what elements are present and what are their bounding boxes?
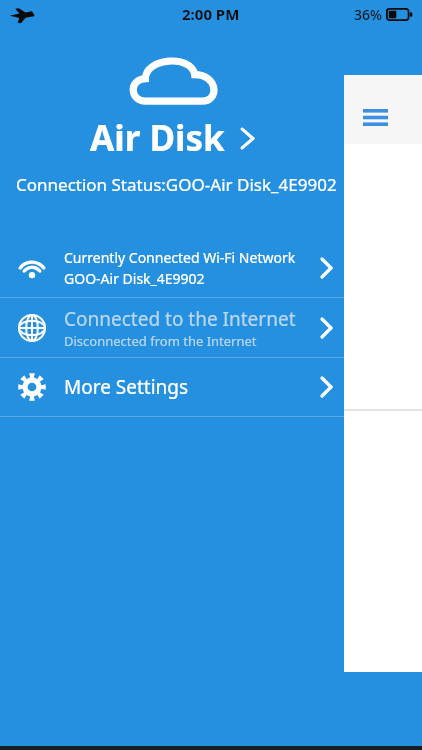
staticText: Air Disk: [90, 114, 225, 162]
staticText: 36%: [354, 5, 382, 24]
button[interactable]: Air Disk: [0, 114, 344, 162]
staticText: 2:00 PM: [182, 4, 240, 24]
button[interactable]: More Settings: [0, 358, 344, 416]
staticText: More Settings: [64, 374, 189, 400]
staticText: GOO-Air Disk_4E9902: [64, 269, 205, 288]
staticText: Currently Connected Wi-Fi Network: [64, 248, 296, 267]
button[interactable]: Currently Connected Wi-Fi Network: [0, 238, 344, 297]
staticText: Disconnected from the Internet: [64, 332, 257, 350]
button[interactable]: Connected to the Internet: [0, 298, 344, 357]
staticText: Connected to the Internet: [64, 306, 296, 332]
staticText: Connection Status:GOO-Air Disk_4E9902: [16, 173, 337, 196]
button[interactable]: Menu: [344, 75, 422, 144]
